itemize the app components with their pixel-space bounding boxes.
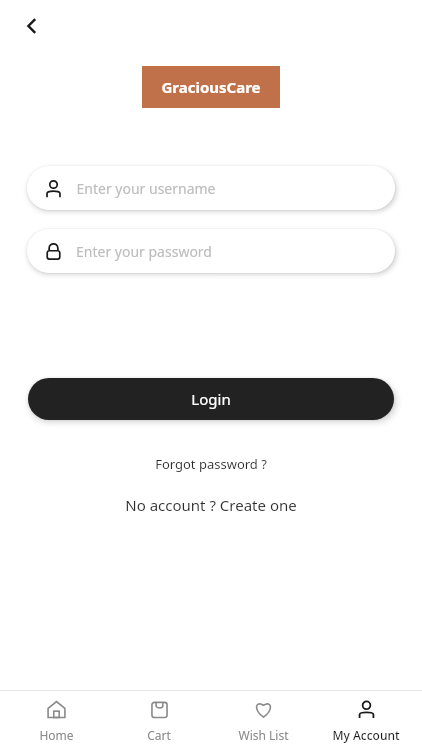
button[interactable]: Wish List [215, 693, 311, 749]
button[interactable]: Username field [27, 166, 395, 210]
button[interactable]: Login [28, 378, 394, 420]
staticText: Wish List [238, 727, 289, 743]
staticText: Cart [147, 727, 171, 743]
button[interactable]: No account ? Create one [113, 491, 309, 519]
button[interactable]: Forgot password ? [143, 451, 279, 477]
staticText: Home [39, 727, 74, 743]
staticText: No account ? Create one [125, 495, 297, 515]
staticText: Login [191, 389, 231, 409]
staticText: GraciousCare [161, 77, 261, 97]
staticText: Enter your password [76, 242, 212, 261]
button[interactable]: Password field [27, 229, 395, 273]
staticText: Enter your username [76, 179, 216, 198]
staticText: Forgot password ? [155, 455, 267, 473]
button[interactable]: Cart [111, 693, 207, 749]
staticText: My Account [332, 727, 400, 743]
button[interactable]: Home [8, 693, 104, 749]
button[interactable]: Back [14, 8, 50, 44]
button[interactable]: My Account [318, 693, 414, 749]
